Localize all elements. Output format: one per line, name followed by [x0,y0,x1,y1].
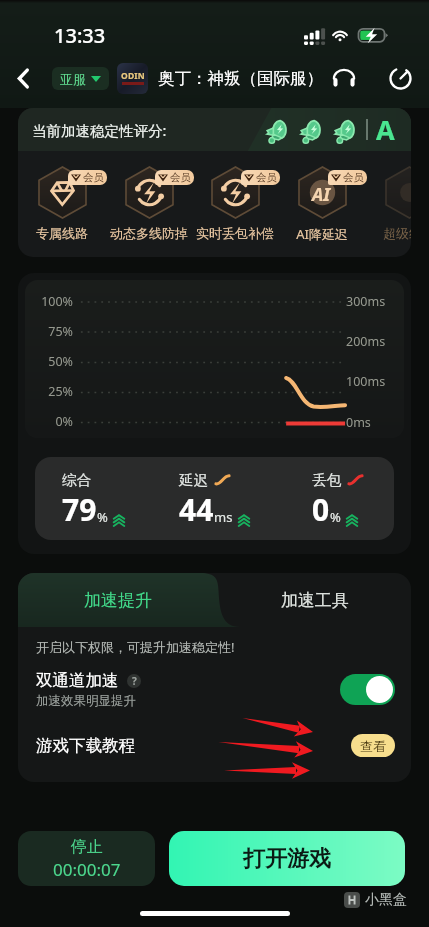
staticText: AI降延迟 [279,225,365,243]
staticText: 加速工具 [281,590,349,611]
staticText: % [97,508,108,526]
staticText: 100ms [346,373,386,390]
button[interactable]: 游戏下载教程 [36,731,395,759]
staticText: 44 [179,489,214,530]
button[interactable]: Refresh [381,59,419,97]
staticText: 会员 [83,171,104,184]
staticText: 75% [25,323,73,340]
button[interactable]: 查看 [351,734,395,757]
staticText: 13:33 [54,22,106,49]
staticText: 会员 [343,171,364,184]
staticText: 小黑盒 [365,891,407,909]
staticText: 打开游戏 [243,845,331,873]
staticText: 00:00:07 [53,858,121,881]
staticText: 游戏下载教程 [36,735,135,756]
staticText: 查看 [360,738,386,754]
staticText: 开启以下权限，可提升加速稳定性! [36,638,235,656]
button[interactable]: 双通道加速 [36,669,395,709]
staticText: 会员 [256,171,277,184]
staticText: 25% [25,383,73,400]
staticText: % [330,508,341,526]
staticText: 0% [25,413,73,430]
staticText: 50% [25,353,73,370]
button[interactable]: 会员 [106,161,192,241]
staticText: AI [312,182,331,207]
staticText: 加速提升 [84,590,152,611]
staticText: 实时丢包补偿 [192,225,278,241]
button[interactable]: 超级线路 [366,161,411,241]
staticText: 超级线路 [366,225,411,241]
staticText: 100% [25,293,73,310]
staticText: 79 [62,489,97,530]
staticText: 300ms [346,293,386,310]
staticText: ms [214,508,233,526]
staticText: 亚服 [60,71,86,87]
staticText: 丢包 [312,471,341,489]
button[interactable]: Back [6,61,40,95]
staticText: 综合 [62,471,91,489]
staticText: 专属线路 [19,225,105,241]
staticText: 奥丁：神叛（国际服） [158,68,323,89]
staticText: 动态多线防掉 [106,225,192,241]
button[interactable]: 亚服 [52,67,109,90]
staticText: 双通道加速 [36,670,119,691]
staticText: 0ms [346,414,371,431]
staticText: 200ms [346,333,386,350]
staticText: ? [132,674,137,688]
button[interactable]: 打开游戏 [169,831,405,886]
staticText: 停止 [71,837,103,857]
button[interactable]: 会员 [19,161,105,241]
button[interactable]: 加速工具 [218,573,411,627]
staticText: 会员 [170,171,191,184]
staticText: 当前加速稳定性评分: [32,120,167,140]
button[interactable]: AI [279,161,365,241]
button[interactable]: 加速提升 [18,573,218,627]
staticText: ODIN [121,70,145,82]
button[interactable]: 会员 [192,161,278,241]
button[interactable]: Customer service headset [325,59,363,97]
staticText: 加速效果明显提升 [36,693,136,709]
button[interactable]: 停止 [18,831,155,886]
staticText: 0 [312,489,330,530]
staticText: 延迟 [179,471,208,489]
staticText: A [376,111,395,148]
button[interactable]: Dual channel acceleration toggle [340,674,395,705]
